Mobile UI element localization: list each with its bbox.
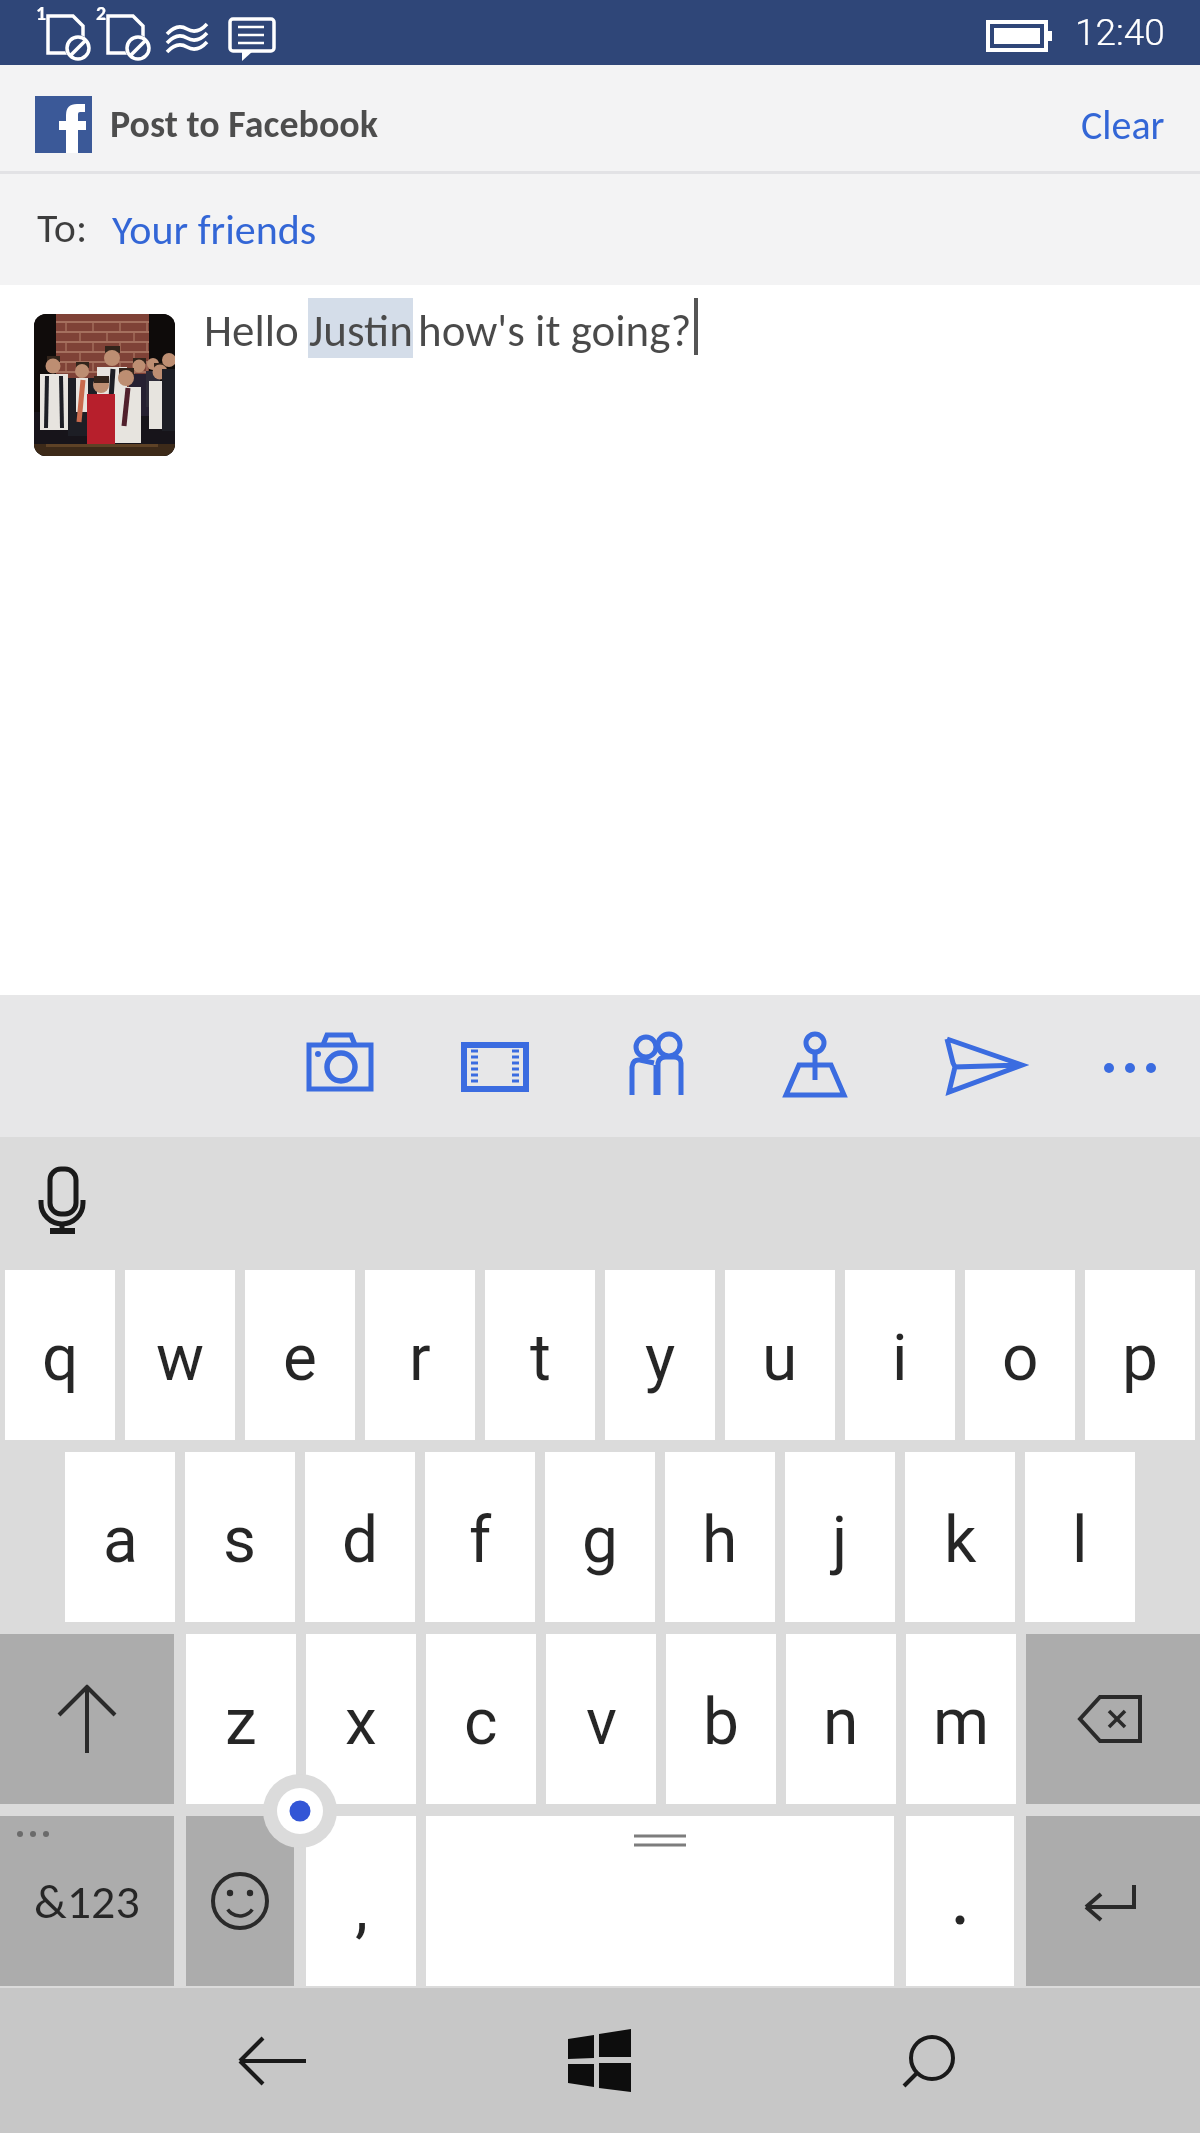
button[interactable]: Clear	[1081, 65, 1200, 171]
button[interactable]: ,	[306, 1816, 416, 1986]
staticText: t	[530, 1321, 551, 1396]
staticText: ,	[355, 1869, 368, 1946]
button[interactable]: c	[426, 1634, 536, 1804]
staticText: n	[823, 1685, 859, 1760]
staticText: v	[586, 1685, 617, 1760]
staticText: &123	[34, 1872, 140, 1931]
staticText: q	[42, 1321, 79, 1396]
button[interactable]: p	[1085, 1270, 1195, 1440]
button[interactable]: f	[425, 1452, 535, 1622]
button[interactable]: n	[786, 1634, 896, 1804]
button[interactable]: y	[605, 1270, 715, 1440]
button[interactable]	[540, 1988, 660, 2133]
staticText: Hello	[204, 303, 299, 358]
staticText: s	[223, 1503, 257, 1578]
button[interactable]	[0, 1634, 174, 1804]
button[interactable]: m	[906, 1634, 1016, 1804]
staticText: u	[762, 1321, 798, 1396]
button[interactable]: s	[185, 1452, 295, 1622]
button[interactable]: v	[546, 1634, 656, 1804]
button[interactable]: z	[186, 1634, 296, 1804]
button[interactable]	[285, 995, 395, 1137]
staticText: f	[469, 1503, 492, 1578]
button[interactable]: b	[666, 1634, 776, 1804]
staticText: Post to Facebook	[110, 101, 379, 147]
staticText: Justin	[309, 303, 413, 358]
button[interactable]	[760, 995, 870, 1137]
staticText: Clear	[1081, 101, 1165, 150]
button[interactable]	[34, 314, 175, 456]
button[interactable]: g	[545, 1452, 655, 1622]
staticText: g	[582, 1503, 618, 1578]
button[interactable]: l	[1025, 1452, 1135, 1622]
button[interactable]	[1026, 1634, 1200, 1804]
button[interactable]: x	[306, 1634, 416, 1804]
button[interactable]	[600, 995, 710, 1137]
staticText: l	[1072, 1503, 1088, 1578]
staticText: 2	[96, 1, 107, 25]
staticText: y	[645, 1321, 676, 1396]
staticText: Your friends	[112, 204, 317, 255]
button[interactable]: o	[965, 1270, 1075, 1440]
staticText: x	[345, 1685, 377, 1760]
staticText: To:	[37, 202, 88, 253]
button[interactable]: i	[845, 1270, 955, 1440]
staticText: e	[283, 1321, 317, 1396]
staticText: how's it going?	[418, 303, 692, 358]
button[interactable]: a	[65, 1452, 175, 1622]
staticText: w	[156, 1321, 205, 1396]
button[interactable]: u	[725, 1270, 835, 1440]
staticText: 12:40	[1075, 11, 1165, 54]
button[interactable]	[426, 1816, 894, 1986]
button[interactable]	[925, 995, 1035, 1137]
button[interactable]: Your friends	[112, 174, 317, 285]
button[interactable]: &123	[0, 1816, 174, 1986]
button[interactable]	[1026, 1816, 1200, 1986]
staticText: j	[832, 1503, 848, 1578]
button[interactable]: q	[5, 1270, 115, 1440]
staticText: c	[464, 1685, 498, 1760]
staticText: a	[103, 1503, 138, 1578]
button[interactable]: h	[665, 1452, 775, 1622]
staticText: b	[703, 1685, 739, 1760]
staticText: r	[409, 1321, 431, 1396]
button[interactable]: d	[305, 1452, 415, 1622]
button[interactable]	[906, 1816, 1014, 1986]
staticText: d	[342, 1503, 379, 1578]
button[interactable]	[38, 1167, 84, 1239]
button[interactable]: e	[245, 1270, 355, 1440]
staticText: h	[702, 1503, 738, 1578]
button[interactable]: k	[905, 1452, 1015, 1622]
button[interactable]: r	[365, 1270, 475, 1440]
button[interactable]	[870, 1988, 995, 2133]
staticText: i	[892, 1321, 908, 1396]
button[interactable]	[186, 1816, 294, 1986]
staticText: m	[933, 1685, 990, 1760]
staticText: k	[944, 1503, 977, 1578]
button[interactable]	[1075, 995, 1185, 1137]
button[interactable]	[440, 995, 550, 1137]
staticText: o	[1002, 1321, 1039, 1396]
button[interactable]: w	[125, 1270, 235, 1440]
staticText: z	[225, 1685, 257, 1760]
button[interactable]: j	[785, 1452, 895, 1622]
button[interactable]	[210, 1988, 335, 2133]
button[interactable]	[35, 96, 92, 153]
staticText: p	[1122, 1321, 1158, 1396]
button[interactable]: t	[485, 1270, 595, 1440]
staticText: 1	[36, 1, 47, 25]
